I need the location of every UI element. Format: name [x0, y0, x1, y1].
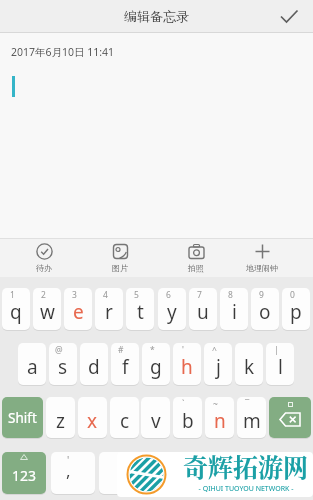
staticText: 5 [134, 289, 139, 301]
staticText: 待办 [36, 263, 52, 273]
staticText: z [56, 408, 65, 434]
staticText: ¯ [245, 398, 250, 410]
staticText: 编辑备忘录 [124, 8, 189, 24]
staticText: | [274, 344, 279, 356]
staticText: i [232, 299, 237, 325]
staticText: - QIHUI TUOYOU NETWORK - [184, 484, 308, 496]
staticText: , [66, 459, 71, 482]
button[interactable]: @ [49, 343, 77, 385]
button[interactable]: 123 [2, 452, 46, 494]
button[interactable]: d [80, 343, 108, 385]
staticText: s [58, 354, 68, 380]
button[interactable]: * [142, 343, 170, 385]
button[interactable]: 6 [158, 288, 186, 330]
staticText: 6 [166, 289, 171, 301]
staticText: l [278, 354, 283, 380]
button[interactable]: c [110, 397, 139, 438]
button[interactable]: 2 [33, 288, 61, 330]
button[interactable] [273, 0, 307, 32]
staticText: o [259, 299, 271, 325]
button[interactable]: # [111, 343, 139, 385]
staticText: * [150, 344, 155, 356]
staticText: c [120, 408, 130, 434]
staticText: w [40, 299, 55, 325]
button[interactable]: a [18, 343, 46, 385]
button[interactable]: 8 [220, 288, 248, 330]
staticText: v [151, 408, 161, 434]
button[interactable] [269, 397, 311, 438]
staticText: 地理闹钟 [246, 263, 278, 273]
staticText: n [214, 408, 226, 434]
staticText: p [290, 299, 302, 325]
button[interactable]: k [235, 343, 263, 385]
button[interactable]: 5 [126, 288, 154, 330]
staticText: @ [55, 344, 63, 356]
staticText: f [122, 354, 129, 380]
button[interactable]: 1 [2, 288, 30, 330]
button[interactable]: 9 [251, 288, 279, 330]
staticText: ^ [212, 344, 217, 356]
staticText: Shift [8, 409, 37, 427]
staticText: k [244, 354, 255, 380]
staticText: 4 [103, 289, 108, 301]
button[interactable]: ^ [204, 343, 232, 385]
staticText: 9 [259, 289, 264, 301]
staticText: 1 [10, 289, 15, 301]
button[interactable] [99, 452, 145, 494]
button[interactable]: ~ [205, 397, 234, 438]
staticText: q [10, 299, 22, 325]
staticText: 123 [12, 466, 37, 485]
staticText: e [73, 299, 84, 325]
staticText: t [137, 299, 144, 325]
staticText: y [167, 299, 177, 325]
staticText: x [87, 408, 98, 434]
button[interactable]: v [141, 397, 170, 438]
staticText: ' [67, 453, 70, 467]
staticText: 0 [290, 289, 295, 301]
staticText: 奇辉拓游网 [183, 448, 309, 484]
staticText: r [105, 299, 113, 325]
staticText: 8 [228, 289, 233, 301]
button[interactable]: 拍照 [166, 240, 226, 275]
staticText: 3 [72, 289, 77, 301]
button[interactable]: 7 [189, 288, 217, 330]
staticText: # [118, 344, 124, 356]
staticText: g [150, 354, 162, 380]
button[interactable]: 地理闹钟 [232, 240, 292, 275]
button[interactable]: ¯ [237, 397, 266, 438]
button[interactable]: ` [173, 397, 202, 438]
staticText: h [181, 354, 193, 380]
button[interactable]: | [266, 343, 294, 385]
button[interactable]: 图片 [90, 240, 150, 275]
button[interactable]: 4 [95, 288, 123, 330]
staticText: 拍照 [188, 263, 204, 273]
staticText: ~ [213, 398, 218, 410]
staticText: j [216, 354, 221, 380]
staticText: 2 [41, 289, 46, 301]
staticText: 7 [197, 289, 202, 301]
staticText: 2017年6月10日 11:41 [11, 45, 115, 59]
staticText: 图片 [112, 263, 128, 273]
staticText: u [197, 299, 209, 325]
staticText: d [88, 354, 100, 380]
staticText: a [27, 354, 38, 380]
button[interactable]: x [78, 397, 107, 438]
button[interactable]: 0 [282, 288, 310, 330]
staticText: ' [182, 344, 184, 356]
button[interactable]: z [46, 397, 75, 438]
staticText: b [182, 408, 194, 434]
staticText: ` [182, 398, 185, 410]
button[interactable]: 待办 [14, 240, 74, 275]
button[interactable]: 3 [64, 288, 92, 330]
button[interactable]: ' [173, 343, 201, 385]
button[interactable]: Shift [2, 397, 43, 438]
button[interactable]: ' [51, 452, 95, 494]
staticText: m [243, 408, 261, 434]
